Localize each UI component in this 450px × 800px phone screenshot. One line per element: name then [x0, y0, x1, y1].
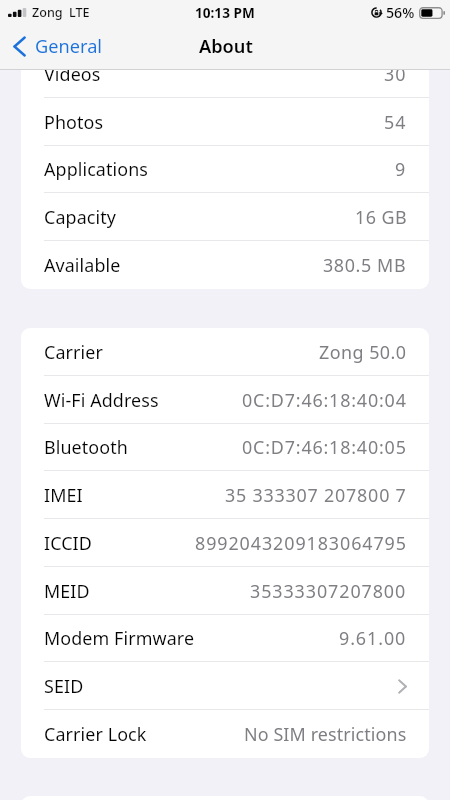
staticText: Carrier Lock — [44, 722, 147, 746]
staticText: Available — [44, 253, 121, 277]
staticText: About — [199, 34, 253, 59]
button[interactable]: ICCID — [21, 519, 429, 567]
button[interactable]: Carrier — [21, 328, 429, 376]
button[interactable]: Wi-Fi Address — [21, 376, 429, 424]
staticText: Wi-Fi Address — [44, 388, 159, 412]
staticText: 56% — [386, 3, 415, 22]
staticText: Carrier — [44, 340, 103, 364]
staticText: IMEI — [44, 483, 83, 507]
staticText: Zong 50.0 — [319, 340, 407, 364]
staticText: MEID — [44, 579, 90, 603]
staticText: Zong — [32, 4, 63, 21]
button[interactable]: IMEI — [21, 471, 429, 519]
button[interactable]: Bluetooth — [21, 423, 429, 471]
staticText: ICCID — [44, 531, 92, 555]
button[interactable]: Photos — [21, 98, 429, 146]
button[interactable]: MEID — [21, 567, 429, 615]
staticText: Capacity — [44, 205, 116, 229]
button[interactable]: Capacity — [21, 193, 429, 241]
staticText: 0C:D7:46:18:40:04 — [242, 388, 407, 412]
button[interactable]: Carrier Lock — [21, 710, 429, 758]
button[interactable]: Available — [21, 241, 429, 289]
button[interactable]: General — [0, 24, 113, 70]
staticText: 16 GB — [355, 205, 407, 229]
staticText: 30 — [384, 70, 407, 86]
staticText: 35333307207800 — [250, 579, 407, 603]
staticText: Videos — [44, 70, 101, 86]
staticText: Photos — [44, 110, 104, 134]
staticText: 54 — [384, 110, 407, 134]
staticText: No SIM restrictions — [244, 722, 407, 746]
button[interactable]: SEID — [21, 662, 429, 710]
button[interactable]: Modem Firmware — [21, 614, 429, 662]
staticText: 9.61.00 — [339, 626, 407, 650]
staticText: 0C:D7:46:18:40:05 — [242, 435, 407, 459]
staticText: General — [35, 34, 103, 59]
staticText: 9 — [395, 157, 407, 181]
staticText: Modem Firmware — [44, 626, 195, 650]
button[interactable]: Videos — [21, 70, 429, 98]
staticText: 10:13 PM — [195, 3, 255, 22]
staticText: 380.5 MB — [323, 253, 407, 277]
staticText: 35 333307 207800 7 — [225, 483, 407, 507]
staticText: Applications — [44, 157, 149, 181]
staticText: 8992043209183064795 — [195, 531, 407, 555]
staticText: LTE — [69, 4, 90, 21]
staticText: SEID — [44, 674, 84, 698]
button[interactable]: Applications — [21, 145, 429, 193]
staticText: Bluetooth — [44, 435, 128, 459]
